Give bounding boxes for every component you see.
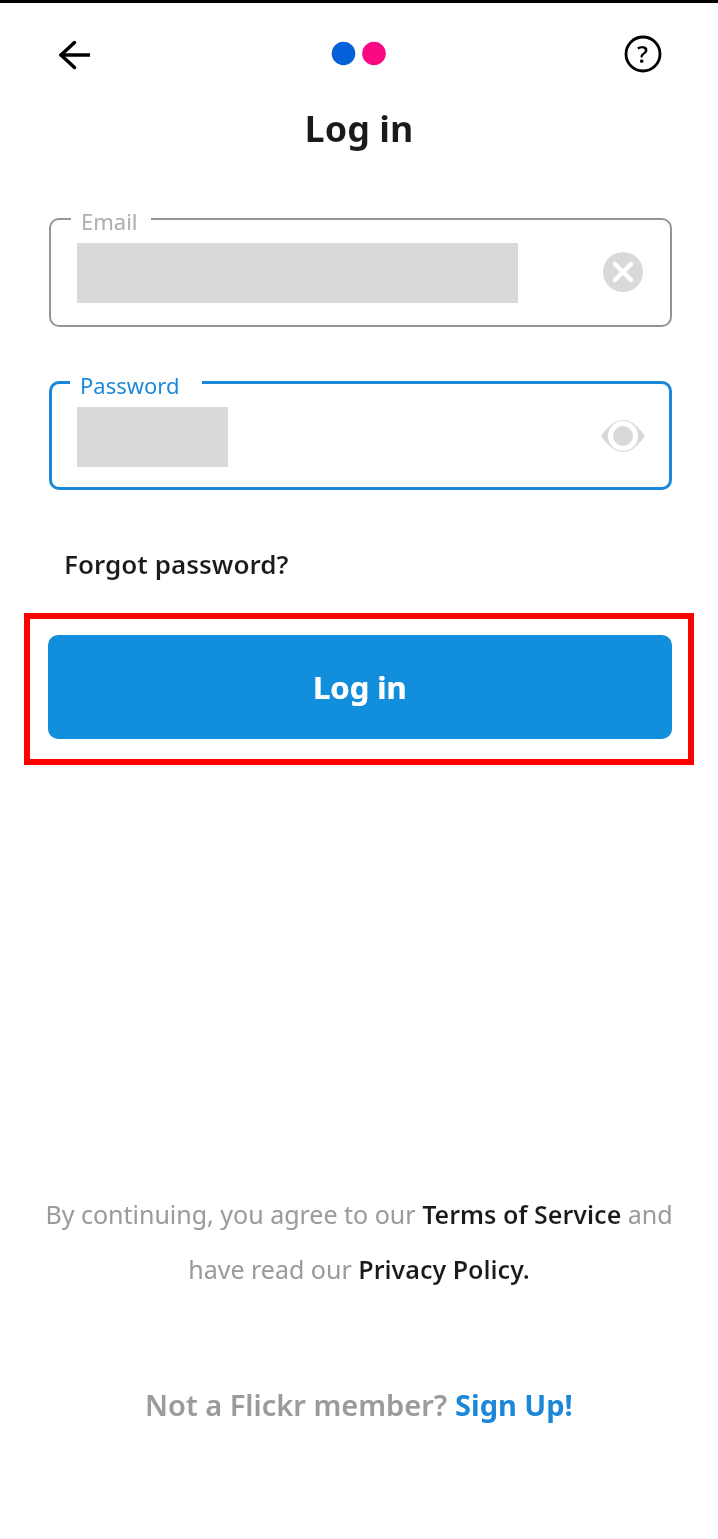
button[interactable]: [51, 31, 99, 79]
staticText: Log in: [0, 104, 718, 153]
staticText: have read our Privacy Policy.: [0, 1252, 718, 1286]
button[interactable]: [599, 412, 647, 460]
button[interactable]: ?: [619, 30, 667, 78]
button[interactable]: Log in: [48, 635, 672, 739]
staticText: Email: [81, 206, 138, 236]
button[interactable]: Not a Flickr member?: [0, 1385, 718, 1424]
staticText: ?: [637, 37, 649, 70]
button[interactable]: [599, 248, 647, 296]
staticText: Log in: [313, 666, 407, 708]
staticText: Not a Flickr member?: [145, 1385, 455, 1424]
staticText: Forgot password?: [64, 546, 289, 581]
staticText: By continuing, you agree to our Terms of…: [0, 1197, 718, 1231]
button[interactable]: Forgot password?: [64, 546, 289, 581]
staticText: Password: [80, 370, 180, 400]
staticText: Sign Up!: [455, 1385, 573, 1424]
